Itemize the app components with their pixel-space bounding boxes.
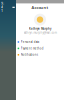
- staticText: Account: [31, 5, 48, 10]
- staticText: Personal data: [21, 40, 39, 44]
- staticText: kathryn.murphy@mail.com: [23, 31, 56, 34]
- button[interactable]: Payment method: [16, 47, 64, 50]
- staticText: 9:41: [1, 2, 4, 13]
- staticText: Payment method: [21, 47, 44, 50]
- button[interactable]: Personal data: [16, 40, 64, 44]
- staticText: Kathryn Murphy: [29, 27, 51, 30]
- staticText: Notifications: [21, 53, 38, 56]
- button[interactable]: Notifications: [16, 53, 64, 56]
